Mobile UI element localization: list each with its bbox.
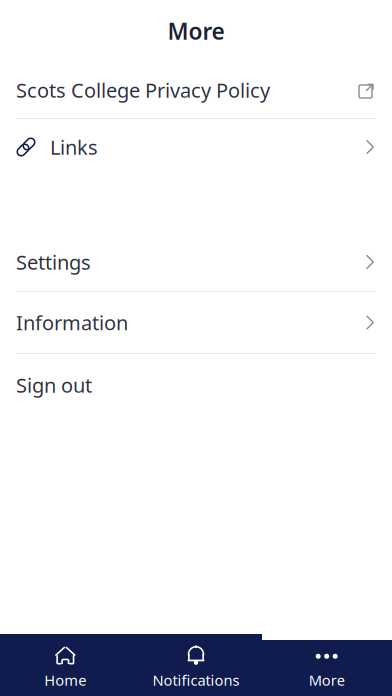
- button[interactable]: Notifications: [131, 640, 261, 696]
- button[interactable]: Links: [0, 119, 392, 175]
- staticText: Scots College Privacy Policy: [16, 77, 270, 103]
- staticText: More: [167, 16, 224, 46]
- button[interactable]: More: [261, 640, 392, 696]
- staticText: Information: [16, 309, 128, 336]
- button[interactable]: Home: [0, 640, 131, 696]
- staticText: Sign out: [16, 372, 92, 398]
- staticText: More: [309, 670, 345, 690]
- button[interactable]: Sign out: [0, 354, 392, 416]
- staticText: Settings: [16, 249, 91, 275]
- staticText: Home: [44, 670, 86, 690]
- staticText: Notifications: [152, 670, 239, 690]
- button[interactable]: Settings: [0, 233, 392, 291]
- button[interactable]: Scots College Privacy Policy: [0, 62, 392, 118]
- button[interactable]: Information: [0, 292, 392, 353]
- staticText: Links: [50, 134, 98, 160]
